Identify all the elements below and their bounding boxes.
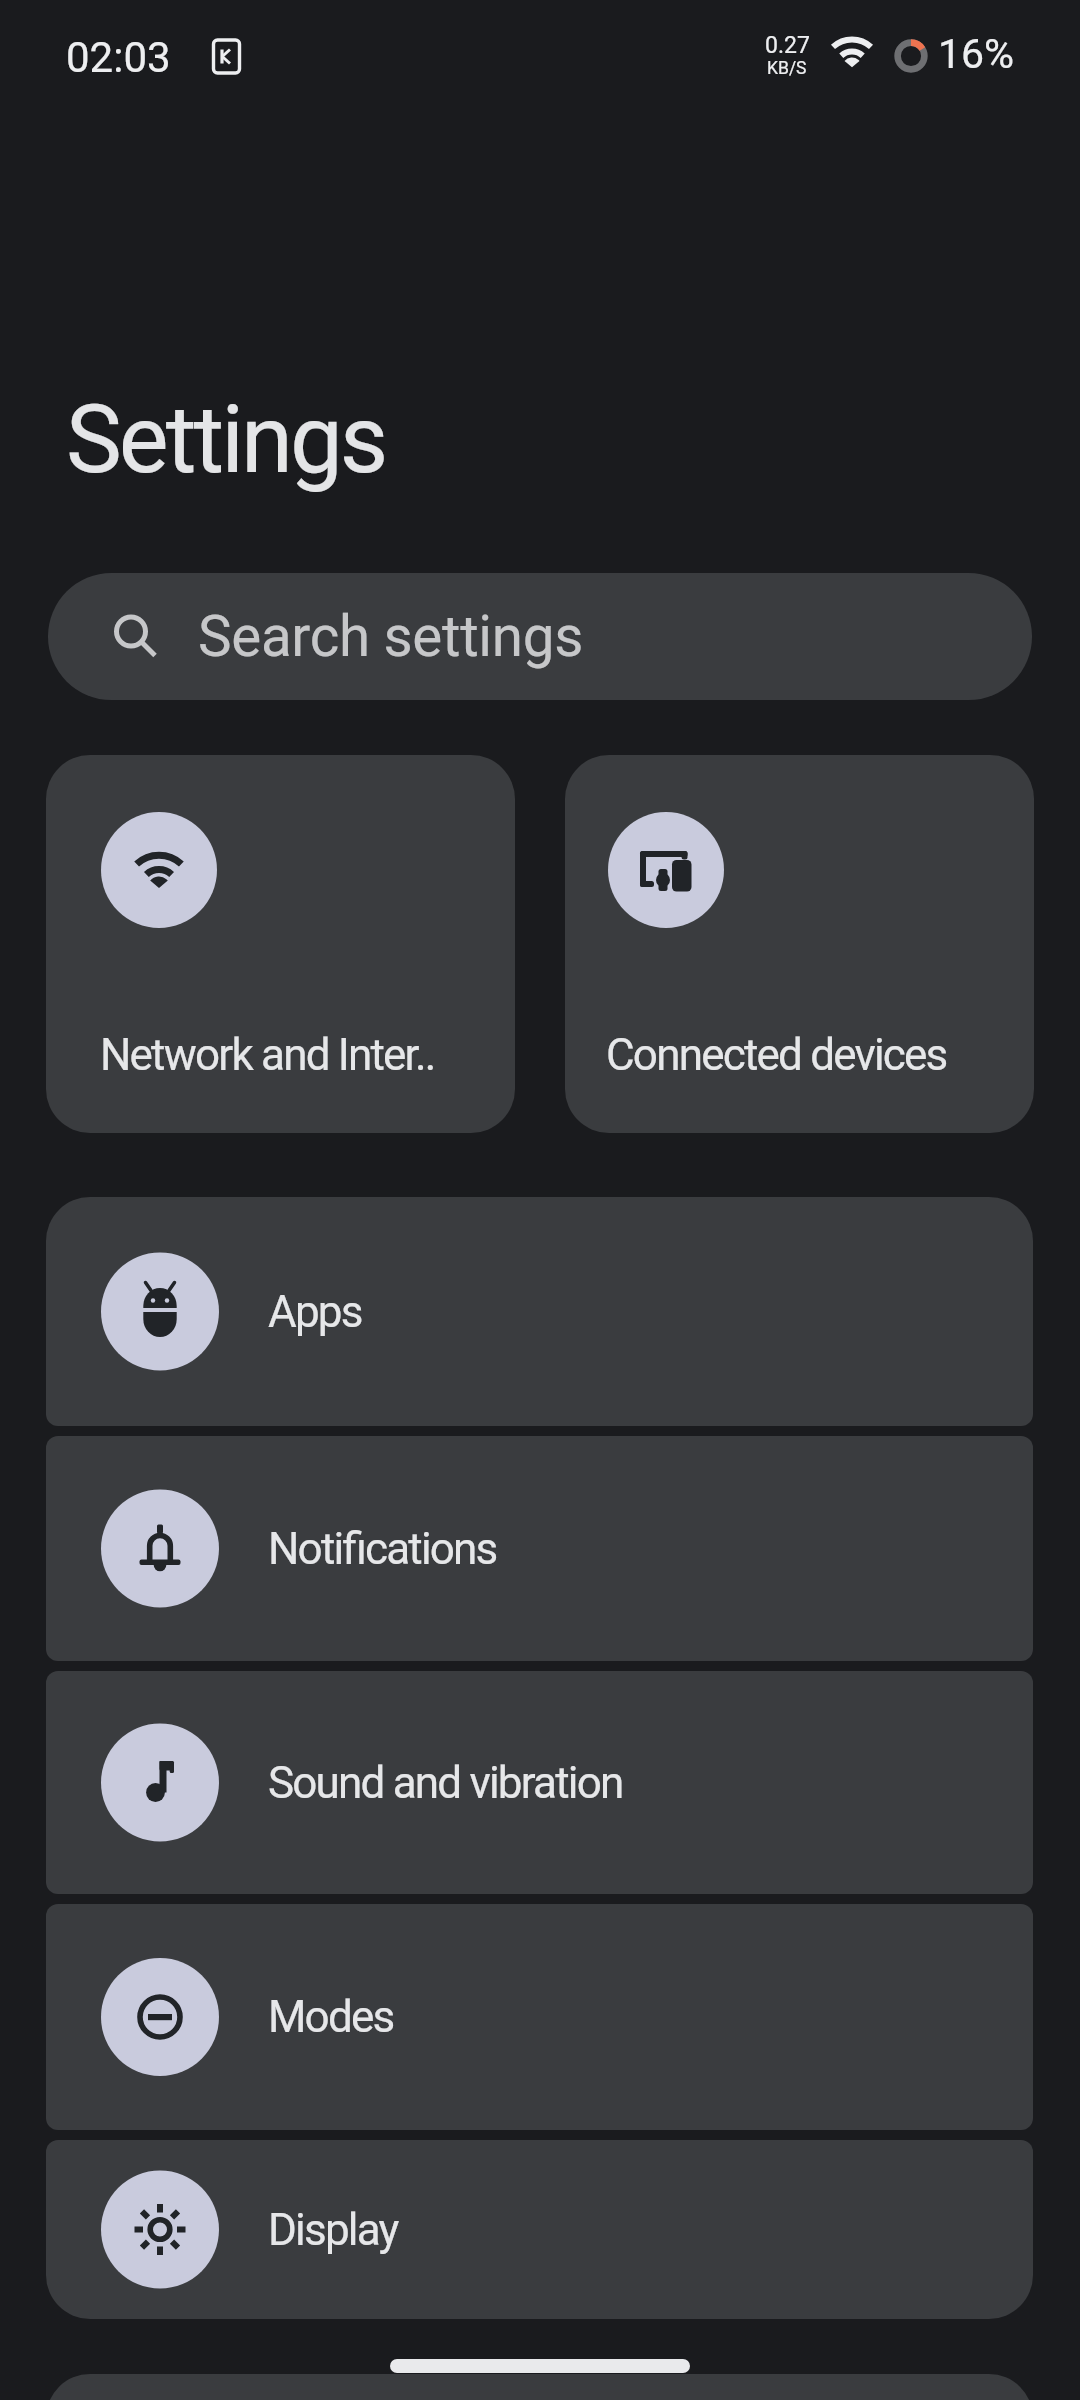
- button[interactable]: Notifications: [46, 1436, 1033, 1661]
- staticText: Apps: [268, 1286, 362, 1338]
- button[interactable]: Apps: [46, 1197, 1033, 1426]
- button[interactable]: Sound and vibration: [46, 1671, 1033, 1894]
- button[interactable]: Connected devices: [565, 755, 1034, 1133]
- button[interactable]: Display: [46, 2140, 1033, 2319]
- staticText: Sound and vibration: [268, 1757, 623, 1809]
- staticText: Search settings: [198, 604, 583, 670]
- staticText: 02:03: [66, 33, 171, 82]
- staticText: KB/S: [767, 58, 807, 79]
- staticText: Notifications: [268, 1523, 497, 1575]
- button[interactable]: Network and Inter..: [46, 755, 515, 1133]
- staticText: Modes: [268, 1991, 394, 2043]
- staticText: Network and Inter..: [100, 1029, 435, 1081]
- staticText: Settings: [66, 385, 386, 495]
- staticText: 16%: [938, 30, 1015, 78]
- button[interactable]: Modes: [46, 1904, 1033, 2130]
- staticText: Display: [268, 2204, 398, 2256]
- staticText: Connected devices: [606, 1029, 947, 1081]
- staticText: 0.27: [765, 32, 810, 59]
- button[interactable]: Search settings: [48, 573, 1032, 700]
